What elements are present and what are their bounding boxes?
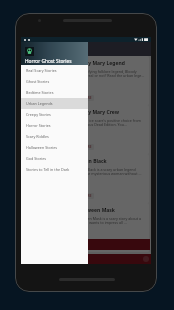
staticText: READ MORE <box>73 145 92 149</box>
button[interactable]: Bedtime Stories <box>21 87 88 98</box>
staticText: Urban Legends <box>26 101 53 106</box>
staticText: Horror Stories <box>26 123 51 128</box>
button[interactable]: Horror Stories <box>21 120 88 131</box>
button[interactable]: Scary Riddles <box>21 131 88 142</box>
staticText: God Stories <box>26 156 47 161</box>
staticText: Bloody Mary Crew <box>74 109 119 116</box>
button[interactable]: Open navigation drawer <box>24 45 32 53</box>
button[interactable]: Halloween Stories <box>21 142 88 153</box>
button[interactable]: Lady in Black <box>23 154 149 203</box>
button[interactable]: Horror Ghost Stories <box>21 37 88 65</box>
button[interactable]: Halloween Mask <box>23 203 149 252</box>
button[interactable]: Urban Legends <box>21 98 88 109</box>
button[interactable]: Stories to Tell in the Dark <box>21 164 88 175</box>
button[interactable]: Bloody Mary Legend <box>23 56 149 105</box>
staticText: READ MORE <box>73 96 92 100</box>
staticText: Real Scary Stories <box>26 68 57 73</box>
button[interactable]: God Stories <box>21 153 88 164</box>
staticText: Lady in Black is a scary urban legend ab… <box>74 167 146 177</box>
staticText: READ MORE <box>73 194 92 198</box>
staticText: Scary Riddles <box>26 134 49 139</box>
button[interactable]: READ MORE <box>71 242 94 248</box>
staticText: Bloody Mary Legend <box>74 60 125 67</box>
staticText: Halloween Stories <box>26 145 58 150</box>
staticText: READ MORE <box>73 243 92 247</box>
button[interactable]: READ MORE <box>71 193 94 199</box>
button[interactable]: Ghost Stories <box>21 76 88 87</box>
staticText: Lady in Black <box>74 158 107 165</box>
staticText: Creepy Stories <box>26 112 51 117</box>
staticText: The terrifying folklore legend, Bloody M… <box>74 69 146 79</box>
button[interactable]: Real Scary Stories <box>21 65 88 76</box>
button[interactable]: READ MORE <box>71 95 94 101</box>
button[interactable]: Ad info <box>143 256 149 262</box>
staticText: Urban Legends <box>35 45 79 53</box>
staticText: Halloween Mask is a scary story about a … <box>74 216 146 226</box>
staticText: Horror Ghost Stories <box>25 58 72 65</box>
button[interactable]: READ MORE <box>71 144 94 150</box>
button[interactable]: Bloody Mary Crew <box>23 105 149 154</box>
staticText: Stories to Tell in the Dark <box>26 167 70 172</box>
button[interactable]: Creepy Stories <box>21 109 88 120</box>
staticText: Bedtime Stories <box>26 90 54 95</box>
button[interactable] <box>22 239 150 250</box>
staticText: Ghost Stories <box>26 79 50 84</box>
button[interactable]: Ad info <box>21 254 151 264</box>
staticText: Halloween Mask <box>74 207 115 214</box>
staticText: A horror ice scare's positive choice fro… <box>74 118 146 128</box>
